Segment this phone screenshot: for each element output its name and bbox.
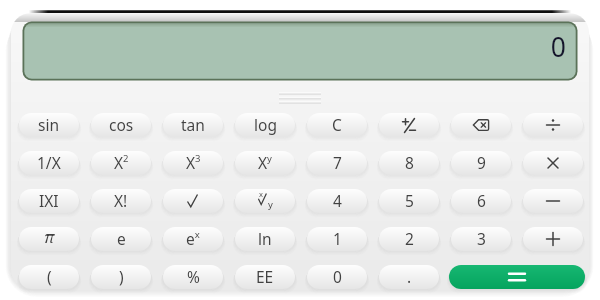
staticText: (: [47, 266, 52, 287]
button[interactable]: Y-th root of X: [235, 189, 295, 213]
button[interactable]: Multiply: [523, 151, 583, 175]
button[interactable]: cos: [91, 113, 151, 137]
staticText: %: [187, 266, 200, 287]
staticText: 3: [477, 228, 486, 249]
button[interactable]: Divide: [523, 113, 583, 137]
button[interactable]: Square root: [163, 189, 223, 213]
button[interactable]: 8: [379, 151, 439, 175]
staticText: 1: [333, 228, 342, 249]
button[interactable]: log: [235, 113, 295, 137]
staticText: 9: [477, 152, 486, 173]
staticText: x: [259, 189, 263, 199]
staticText: y: [268, 198, 273, 211]
button[interactable]: ): [91, 265, 151, 289]
staticText: C: [332, 114, 342, 135]
staticText: ln: [258, 228, 272, 249]
staticText: ex: [186, 228, 200, 249]
staticText: 1/X: [37, 152, 61, 173]
button[interactable]: X2: [91, 151, 151, 175]
button[interactable]: Add: [523, 227, 583, 251]
button[interactable]: EE: [235, 265, 295, 289]
button[interactable]: 3: [451, 227, 511, 251]
staticText: X!: [114, 190, 128, 211]
staticText: 2: [405, 228, 414, 249]
button[interactable]: X!: [91, 189, 151, 213]
staticText: 4: [333, 190, 342, 211]
button[interactable]: 7: [307, 151, 367, 175]
staticText: 8: [405, 152, 414, 173]
staticText: e: [117, 228, 126, 249]
button[interactable]: 0: [307, 265, 367, 289]
staticText: 0: [24, 29, 566, 79]
button[interactable]: ex: [163, 227, 223, 251]
button[interactable]: Subtract: [523, 189, 583, 213]
button[interactable]: Backspace: [451, 113, 511, 137]
button[interactable]: Toggle sign: [379, 113, 439, 137]
button[interactable]: 4: [307, 189, 367, 213]
staticText: log: [254, 114, 277, 135]
staticText: 5: [405, 190, 414, 211]
button[interactable]: .: [379, 265, 439, 289]
button[interactable]: 1: [307, 227, 367, 251]
staticText: sin: [38, 114, 60, 135]
staticText: 7: [333, 152, 342, 173]
button[interactable]: (: [19, 265, 79, 289]
button[interactable]: C: [307, 113, 367, 137]
staticText: X3: [186, 152, 201, 173]
staticText: .: [407, 266, 412, 287]
button[interactable]: π: [19, 227, 79, 251]
staticText: 6: [477, 190, 486, 211]
button[interactable]: Equals: [449, 265, 585, 289]
staticText: EE: [256, 266, 274, 287]
button[interactable]: IXI: [19, 189, 79, 213]
staticText: tan: [181, 114, 205, 135]
staticText: Xy: [258, 152, 272, 173]
button[interactable]: 1/X: [19, 151, 79, 175]
staticText: ): [119, 266, 124, 287]
staticText: X2: [114, 152, 129, 173]
button[interactable]: 9: [451, 151, 511, 175]
button[interactable]: 6: [451, 189, 511, 213]
button[interactable]: e: [91, 227, 151, 251]
button[interactable]: tan: [163, 113, 223, 137]
button[interactable]: ln: [235, 227, 295, 251]
button[interactable]: 2: [379, 227, 439, 251]
button[interactable]: sin: [19, 113, 79, 137]
staticText: IXI: [39, 190, 59, 211]
staticText: π: [44, 227, 55, 248]
staticText: cos: [109, 114, 134, 135]
button[interactable]: %: [163, 265, 223, 289]
button[interactable]: X3: [163, 151, 223, 175]
button[interactable]: Xy: [235, 151, 295, 175]
staticText: 0: [333, 266, 342, 287]
button[interactable]: 5: [379, 189, 439, 213]
